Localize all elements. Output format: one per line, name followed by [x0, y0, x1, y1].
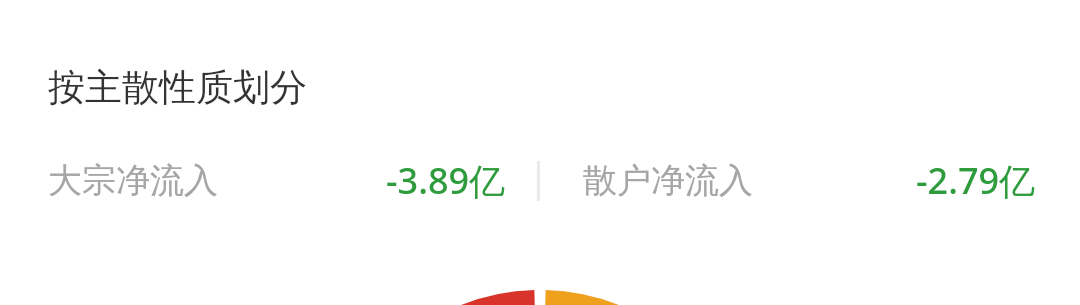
button[interactable]: 资金分布饼图 — [0, 0, 1080, 305]
staticText: 散户净流入 — [583, 159, 753, 202]
staticText: 大宗净流入 — [48, 159, 218, 202]
staticText: 按主散性质划分 — [48, 64, 307, 111]
button[interactable]: 散户净流入 — [583, 152, 1036, 208]
button[interactable]: 大宗净流入 — [48, 152, 506, 208]
staticText: -3.89亿 — [386, 156, 506, 205]
staticText: -2.79亿 — [916, 156, 1036, 205]
button[interactable]: 按主散性质划分 — [48, 64, 307, 111]
